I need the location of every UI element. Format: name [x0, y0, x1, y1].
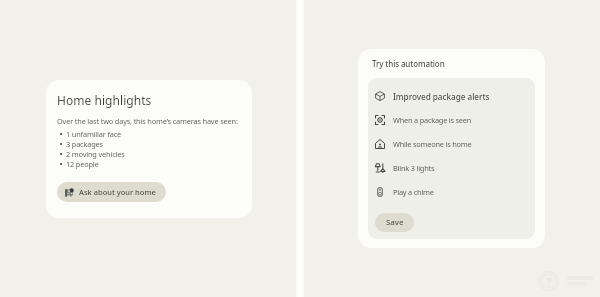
- staticText: Blink 3 lights: [393, 163, 435, 173]
- staticText: When a package is seen: [393, 115, 472, 125]
- button[interactable]: Play a chime: [368, 182, 535, 202]
- button[interactable]: Improved package alerts: [368, 86, 535, 106]
- button[interactable]: Save: [375, 213, 414, 232]
- staticText: 12 people: [66, 159, 99, 169]
- staticText: 2 moving vehicles: [66, 149, 125, 159]
- button[interactable]: Blink 3 lights: [368, 158, 535, 178]
- staticText: Save: [386, 217, 404, 228]
- staticText: Play a chime: [393, 187, 434, 197]
- staticText: Improved package alerts: [393, 91, 490, 102]
- staticText: Over the last two days, this home’s came…: [57, 116, 238, 126]
- staticText: Ask about your home: [79, 187, 156, 197]
- button[interactable]: When a package is seen: [368, 110, 535, 130]
- button[interactable]: While someone is home: [368, 134, 535, 154]
- staticText: Try this automation: [372, 58, 445, 69]
- button[interactable]: Ask about your home: [57, 182, 166, 202]
- staticText: While someone is home: [393, 139, 472, 149]
- staticText: 3 packages: [66, 139, 103, 149]
- staticText: 1 unfamiliar face: [66, 129, 122, 139]
- staticText: Home highlights: [57, 92, 152, 108]
